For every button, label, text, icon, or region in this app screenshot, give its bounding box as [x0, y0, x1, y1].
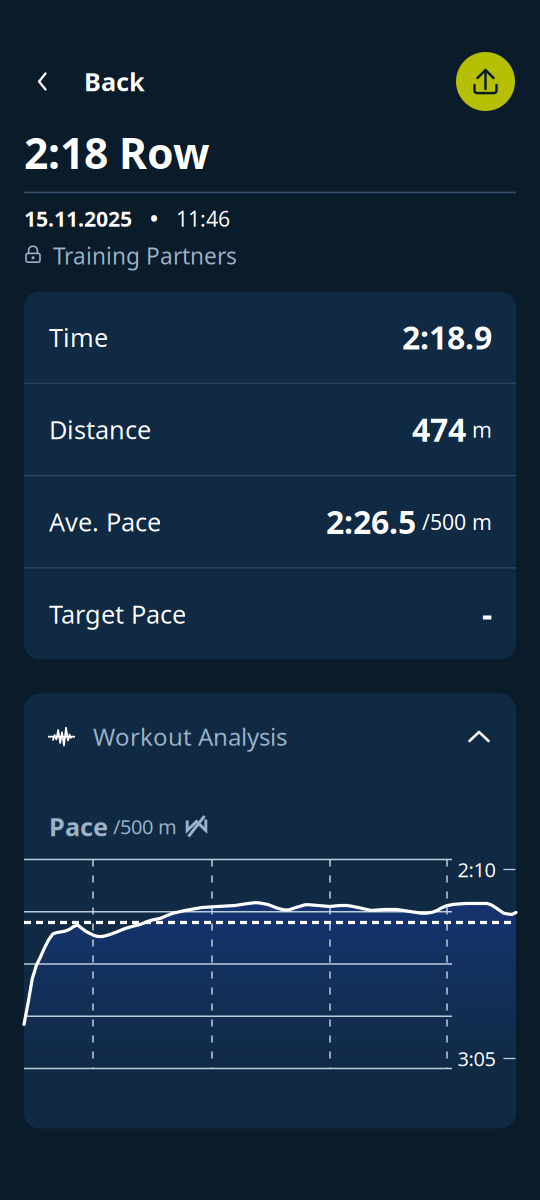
button[interactable]: Time — [24, 292, 516, 383]
staticText: Workout Analysis — [93, 721, 287, 752]
staticText: /500 m — [416, 507, 492, 536]
button[interactable]: Distance — [24, 384, 516, 475]
staticText: • — [132, 204, 176, 233]
staticText: 2:26.5 — [326, 500, 416, 543]
staticText: 474 — [412, 408, 466, 451]
button[interactable]: Share — [456, 52, 515, 111]
staticText: Training Partners — [53, 240, 237, 271]
button[interactable]: Workout Analysis — [24, 693, 516, 779]
staticText: 15.11.2025 — [24, 204, 132, 233]
staticText: m — [466, 415, 492, 443]
staticText: Pace — [49, 810, 108, 843]
staticText: Time — [49, 320, 108, 354]
button[interactable]: Training Partners — [0, 242, 540, 270]
staticText: Target Pace — [49, 597, 186, 631]
staticText: 3:05 — [457, 1045, 495, 1072]
staticText: - — [482, 593, 492, 635]
staticText: Distance — [49, 413, 151, 446]
staticText: 2:18 Row — [24, 124, 210, 181]
staticText: /500 m — [108, 813, 177, 840]
staticText: Back — [84, 65, 145, 98]
staticText: Ave. Pace — [49, 505, 161, 538]
button[interactable]: Target Pace — [24, 568, 516, 659]
staticText: 2:10 — [457, 856, 495, 883]
staticText: 11:46 — [176, 204, 230, 233]
staticText: 2:18.9 — [402, 316, 492, 358]
button[interactable]: Ave. Pace — [24, 476, 516, 567]
button[interactable]: Back — [0, 53, 165, 109]
